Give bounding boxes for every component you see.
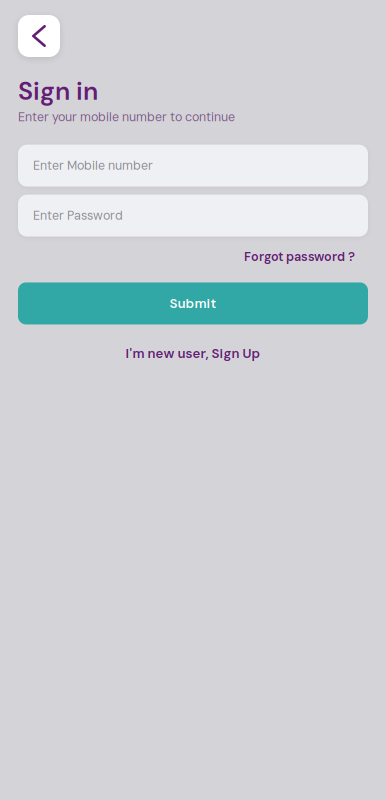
- button[interactable]: Submit: [18, 282, 368, 324]
- button[interactable]: Forgot password ?: [244, 249, 355, 265]
- staticText: Enter your mobile number to continue: [18, 109, 235, 125]
- staticText: Forgot password ?: [244, 249, 355, 265]
- button[interactable]: I'm new user, Sign Up: [125, 345, 260, 362]
- button[interactable]: Back: [18, 15, 60, 57]
- staticText: Submit: [169, 295, 216, 312]
- staticText: I'm new user, Sign Up: [125, 345, 260, 362]
- staticText: Enter Mobile number: [33, 158, 153, 174]
- staticText: Sign in: [18, 74, 98, 107]
- staticText: Enter Password: [33, 208, 123, 224]
